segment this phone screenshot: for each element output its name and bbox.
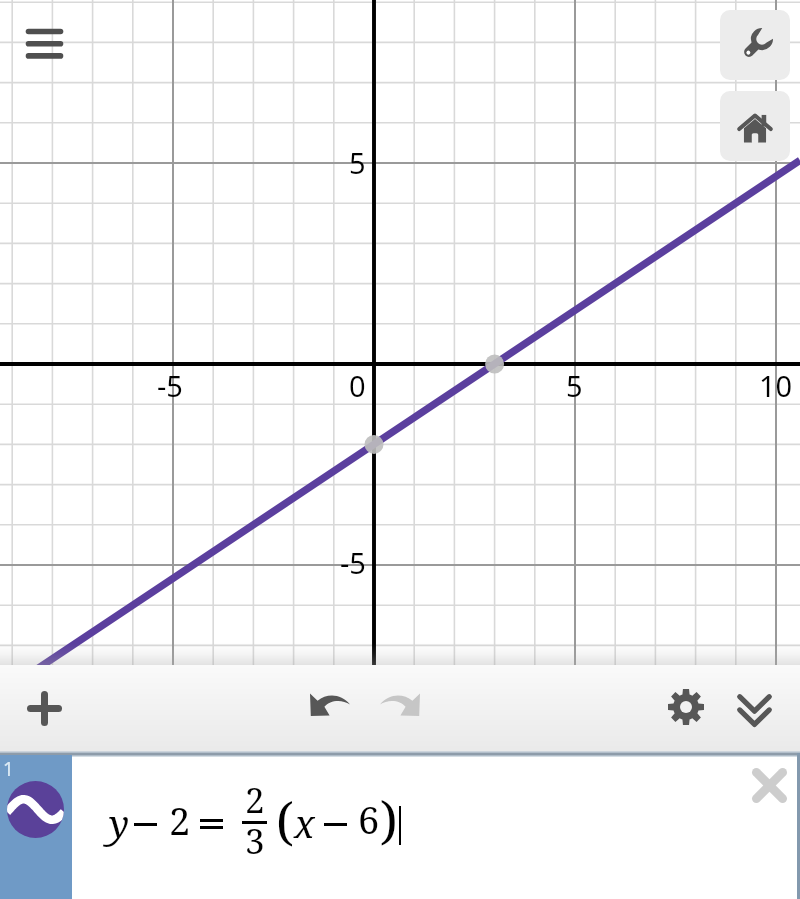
staticText: 10 (759, 366, 793, 405)
button[interactable]: Settings (656, 677, 716, 737)
button[interactable]: Undo (300, 674, 360, 734)
button[interactable]: Menu (14, 15, 74, 75)
staticText: x (294, 797, 315, 849)
button[interactable]: Add expression (14, 678, 74, 738)
staticText: 3 (245, 817, 265, 865)
staticText: 0 (349, 366, 366, 405)
staticText: -5 (157, 366, 183, 405)
staticText: -5 (340, 543, 366, 582)
button[interactable]: Tools (720, 10, 790, 80)
staticText: 5 (566, 366, 583, 405)
staticText: 2 (169, 794, 191, 846)
staticText: ) (380, 784, 398, 853)
button[interactable]: Delete expression (735, 751, 800, 819)
staticText: 2 (245, 776, 265, 824)
staticText: 1 (3, 756, 14, 782)
button[interactable]: Expression color (0, 755, 72, 899)
button[interactable]: Home (720, 91, 790, 161)
button[interactable]: Collapse (724, 679, 784, 739)
staticText: ( (276, 785, 294, 854)
button[interactable]: Redo (370, 674, 430, 734)
staticText: y (109, 797, 130, 849)
staticText: 6 (358, 793, 380, 845)
staticText: 5 (349, 143, 366, 182)
